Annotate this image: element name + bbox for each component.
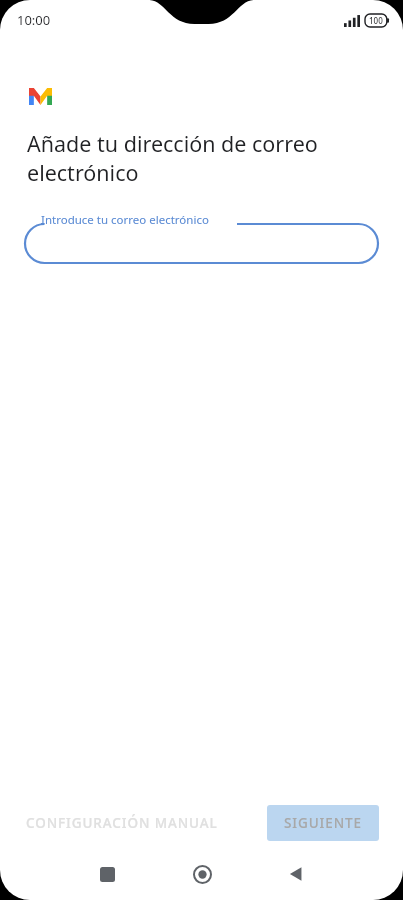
button[interactable]: SIGUIENTE: [267, 805, 379, 841]
staticText: 100: [369, 15, 383, 26]
button[interactable]: Recents: [84, 851, 130, 897]
button[interactable]: CONFIGURACIÓN MANUAL: [14, 806, 230, 840]
button[interactable]: Back: [273, 851, 319, 897]
staticText: SIGUIENTE: [284, 814, 362, 832]
staticText: 10:00: [17, 11, 51, 29]
staticText: CONFIGURACIÓN MANUAL: [26, 814, 218, 832]
button[interactable]: Home: [179, 851, 225, 897]
staticText: Añade tu dirección de correo electrónico: [27, 129, 357, 187]
button[interactable]: Introduce tu correo electrónico: [0, 208, 403, 270]
staticText: Introduce tu correo electrónico: [41, 212, 209, 228]
